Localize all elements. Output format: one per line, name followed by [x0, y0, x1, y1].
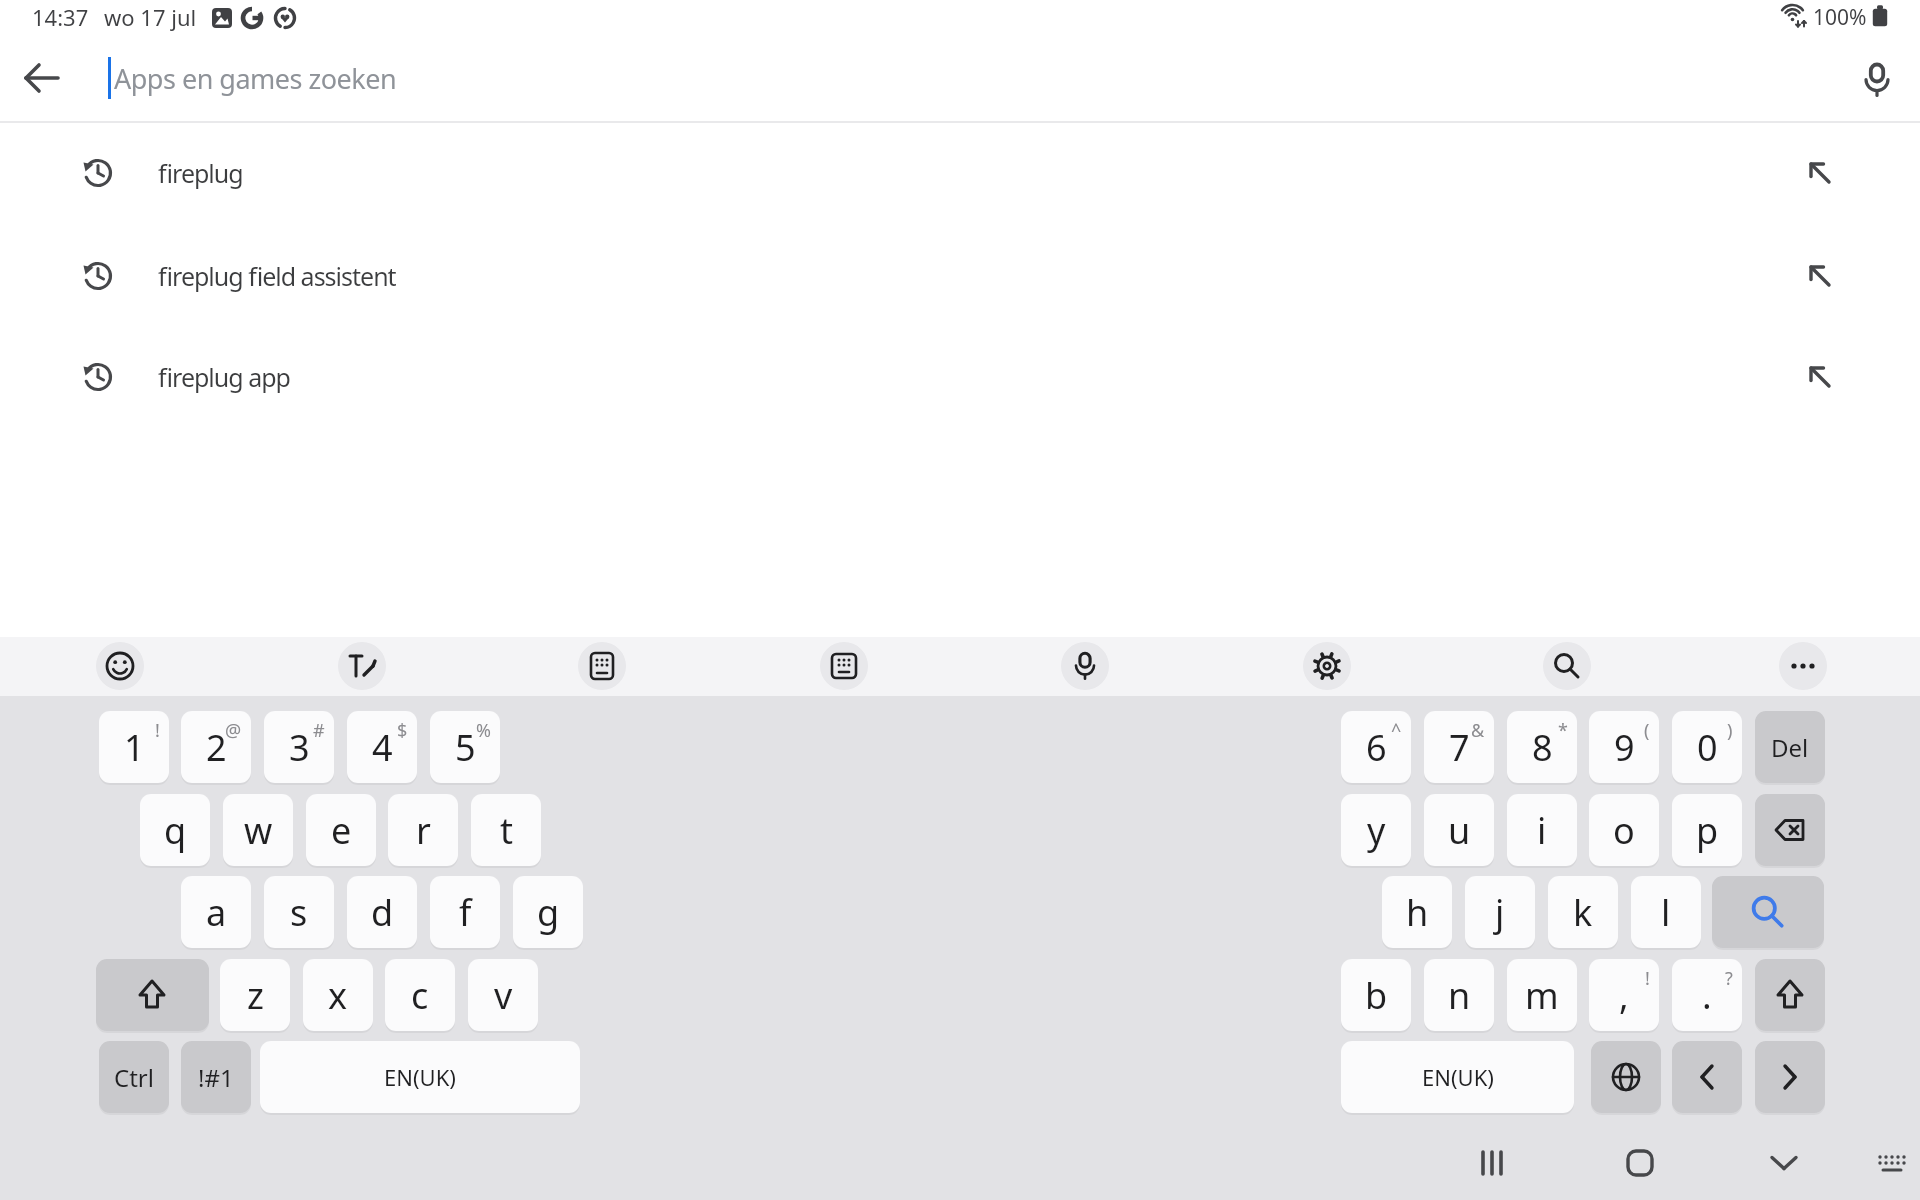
- button[interactable]: [1755, 959, 1825, 1031]
- button[interactable]: 9: [1589, 711, 1659, 783]
- button[interactable]: 4: [347, 711, 417, 783]
- button[interactable]: ,: [1589, 959, 1659, 1031]
- button[interactable]: 0: [1672, 711, 1742, 783]
- button[interactable]: n: [1424, 959, 1494, 1031]
- button[interactable]: v: [468, 959, 538, 1031]
- button[interactable]: c: [385, 959, 455, 1031]
- button[interactable]: r: [388, 794, 458, 866]
- staticText: l: [1661, 888, 1671, 937]
- button[interactable]: Apps en games zoeken: [114, 52, 814, 104]
- button[interactable]: [96, 959, 209, 1031]
- button[interactable]: 6: [1341, 711, 1411, 783]
- staticText: b: [1365, 971, 1388, 1020]
- button[interactable]: 2: [181, 711, 251, 783]
- button[interactable]: [1779, 642, 1827, 690]
- staticText: 9: [1614, 723, 1635, 772]
- button[interactable]: EN(UK): [1341, 1041, 1574, 1113]
- button[interactable]: q: [140, 794, 210, 866]
- button[interactable]: [1762, 1141, 1806, 1185]
- staticText: fireplug field assistent: [158, 259, 396, 293]
- staticText: 7: [1449, 723, 1470, 772]
- staticText: p: [1696, 806, 1719, 855]
- staticText: e: [331, 806, 352, 855]
- button[interactable]: u: [1424, 794, 1494, 866]
- button[interactable]: [1591, 1041, 1661, 1113]
- button[interactable]: k: [1548, 876, 1618, 948]
- button[interactable]: [1870, 1141, 1914, 1185]
- staticText: ?: [1725, 966, 1733, 991]
- staticText: .: [1702, 971, 1712, 1020]
- button[interactable]: y: [1341, 794, 1411, 866]
- button[interactable]: w: [223, 794, 293, 866]
- button[interactable]: [578, 642, 626, 690]
- button[interactable]: 8: [1507, 711, 1577, 783]
- button[interactable]: 7: [1424, 711, 1494, 783]
- button[interactable]: [1303, 642, 1351, 690]
- button[interactable]: a: [181, 876, 251, 948]
- staticText: 8: [1532, 723, 1553, 772]
- button[interactable]: p: [1672, 794, 1742, 866]
- staticText: ): [1727, 718, 1733, 743]
- staticText: i: [1537, 806, 1547, 855]
- button[interactable]: !#1: [181, 1041, 251, 1113]
- button[interactable]: [20, 56, 64, 100]
- button[interactable]: .: [1672, 959, 1742, 1031]
- button[interactable]: s: [264, 876, 334, 948]
- button[interactable]: EN(UK): [260, 1041, 580, 1113]
- staticText: m: [1525, 971, 1559, 1020]
- button[interactable]: x: [303, 959, 373, 1031]
- staticText: n: [1448, 971, 1471, 1020]
- staticText: Apps en games zoeken: [114, 60, 397, 97]
- button[interactable]: Ctrl: [99, 1041, 169, 1113]
- staticText: EN(UK): [384, 1062, 456, 1092]
- staticText: 2: [206, 723, 227, 772]
- staticText: a: [206, 888, 227, 937]
- button[interactable]: z: [220, 959, 290, 1031]
- button[interactable]: fireplug field assistent: [0, 225, 1920, 327]
- staticText: Del: [1771, 731, 1809, 764]
- button[interactable]: o: [1589, 794, 1659, 866]
- staticText: %: [476, 718, 491, 743]
- button[interactable]: [1672, 1041, 1742, 1113]
- staticText: ^: [1391, 718, 1402, 743]
- button[interactable]: 3: [264, 711, 334, 783]
- staticText: 3: [289, 723, 310, 772]
- button[interactable]: 1: [99, 711, 169, 783]
- staticText: u: [1448, 806, 1471, 855]
- staticText: d: [371, 888, 394, 937]
- button[interactable]: h: [1382, 876, 1452, 948]
- button[interactable]: i: [1507, 794, 1577, 866]
- button[interactable]: [820, 642, 868, 690]
- button[interactable]: [1543, 642, 1591, 690]
- button[interactable]: [1061, 642, 1109, 690]
- staticText: !: [1645, 966, 1650, 991]
- button[interactable]: [1755, 794, 1825, 866]
- staticText: r: [416, 806, 431, 855]
- button[interactable]: t: [471, 794, 541, 866]
- button[interactable]: f: [430, 876, 500, 948]
- staticText: o: [1613, 806, 1635, 855]
- staticText: j: [1495, 888, 1505, 937]
- button[interactable]: d: [347, 876, 417, 948]
- staticText: EN(UK): [1422, 1062, 1494, 1092]
- button[interactable]: [1470, 1141, 1514, 1185]
- button[interactable]: [338, 642, 386, 690]
- button[interactable]: e: [306, 794, 376, 866]
- button[interactable]: l: [1631, 876, 1701, 948]
- button[interactable]: m: [1507, 959, 1577, 1031]
- button[interactable]: fireplug app: [0, 326, 1920, 428]
- staticText: 0: [1697, 723, 1718, 772]
- button[interactable]: j: [1465, 876, 1535, 948]
- button[interactable]: [1618, 1141, 1662, 1185]
- button[interactable]: g: [513, 876, 583, 948]
- button[interactable]: [1853, 56, 1901, 104]
- staticText: w: [244, 806, 273, 855]
- button[interactable]: fireplug: [0, 122, 1920, 224]
- staticText: x: [328, 971, 348, 1020]
- button[interactable]: [1755, 1041, 1825, 1113]
- button[interactable]: [96, 642, 144, 690]
- button[interactable]: [1712, 876, 1824, 948]
- button[interactable]: 5: [430, 711, 500, 783]
- button[interactable]: Del: [1755, 711, 1825, 783]
- button[interactable]: b: [1341, 959, 1411, 1031]
